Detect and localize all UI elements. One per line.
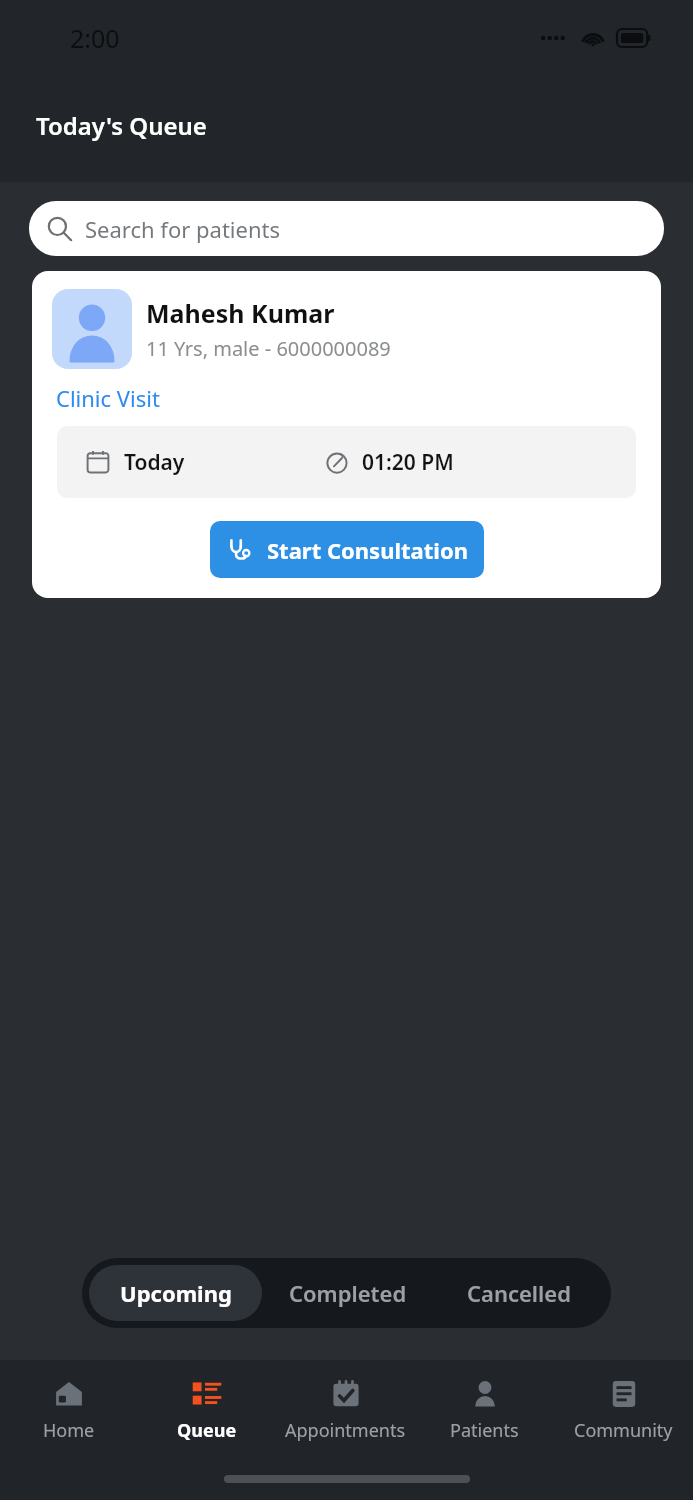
staticText: 01:20 PM	[362, 448, 454, 477]
staticText: Clinic Visit	[56, 383, 160, 413]
button[interactable]: Community	[554, 1377, 693, 1443]
button[interactable]: Patients	[415, 1377, 554, 1443]
staticText: Home	[43, 1418, 95, 1443]
button[interactable]: Start Consultation	[210, 521, 484, 578]
button[interactable]: Appointments	[276, 1377, 415, 1443]
staticText: Search for patients	[85, 214, 281, 244]
button[interactable]: Mahesh Kumar	[32, 271, 661, 598]
button[interactable]: Home	[0, 1377, 138, 1443]
staticText: Today	[124, 448, 185, 477]
staticText: Upcoming	[120, 1278, 232, 1308]
staticText: Start Consultation	[267, 535, 468, 565]
staticText: Community	[574, 1418, 673, 1443]
staticText: Completed	[289, 1278, 407, 1308]
staticText: Appointments	[285, 1418, 406, 1443]
staticText: Patients	[450, 1418, 519, 1443]
staticText: 11 Yrs, male - 6000000089	[146, 335, 391, 362]
button[interactable]: Completed	[262, 1265, 433, 1321]
staticText: 2:00	[70, 21, 120, 55]
staticText: Cancelled	[467, 1278, 571, 1308]
button[interactable]: Search for patients	[29, 201, 664, 256]
button[interactable]: Cancelled	[433, 1265, 604, 1321]
staticText: Queue	[177, 1418, 237, 1443]
staticText: Today's Queue	[36, 109, 207, 142]
staticText: Mahesh Kumar	[146, 296, 335, 330]
button[interactable]: Queue	[138, 1377, 276, 1443]
button[interactable]: Upcoming	[89, 1265, 262, 1321]
